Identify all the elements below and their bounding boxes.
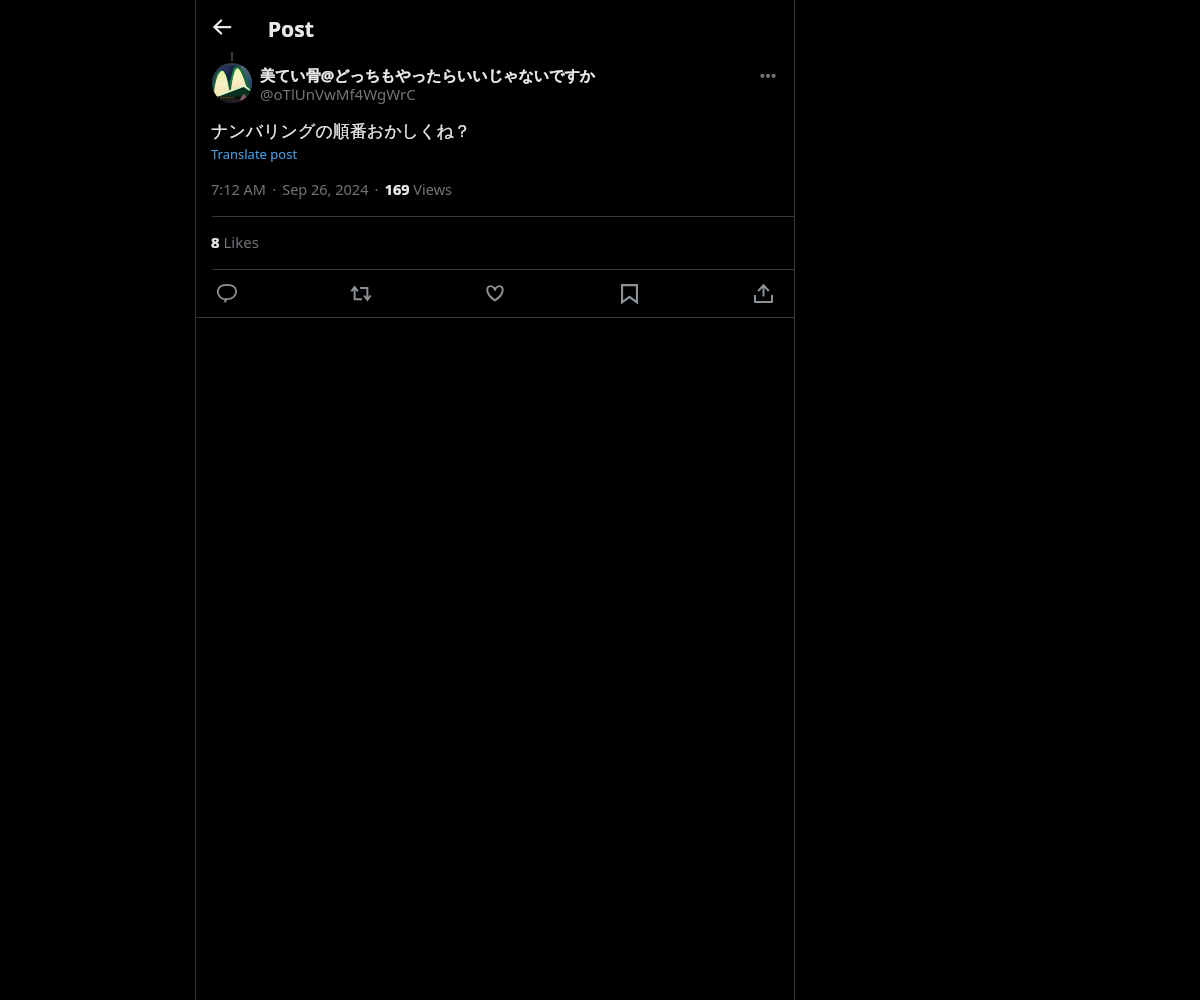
staticText: 7:12 AM · Sep 26, 2024 · 169 Views (211, 179, 453, 199)
button[interactable]: Share (746, 276, 780, 310)
button[interactable]: Repost (344, 276, 378, 310)
button[interactable]: More options (751, 58, 785, 92)
button[interactable] (212, 63, 252, 103)
button[interactable]: Bookmark (612, 276, 646, 310)
button[interactable]: Translate post (211, 145, 298, 163)
staticText: Post (268, 15, 314, 44)
button[interactable]: 8 Likes (211, 232, 259, 252)
button[interactable]: Reply (210, 276, 244, 310)
button[interactable]: Like (478, 276, 512, 310)
staticText: 美てい骨@どっちもやったらいいじゃないですか (260, 65, 596, 85)
button[interactable]: Back (205, 10, 239, 44)
staticText: @oTlUnVwMf4WgWrC (260, 84, 416, 104)
staticText: ナンバリングの順番おかしくね？ (211, 121, 471, 142)
